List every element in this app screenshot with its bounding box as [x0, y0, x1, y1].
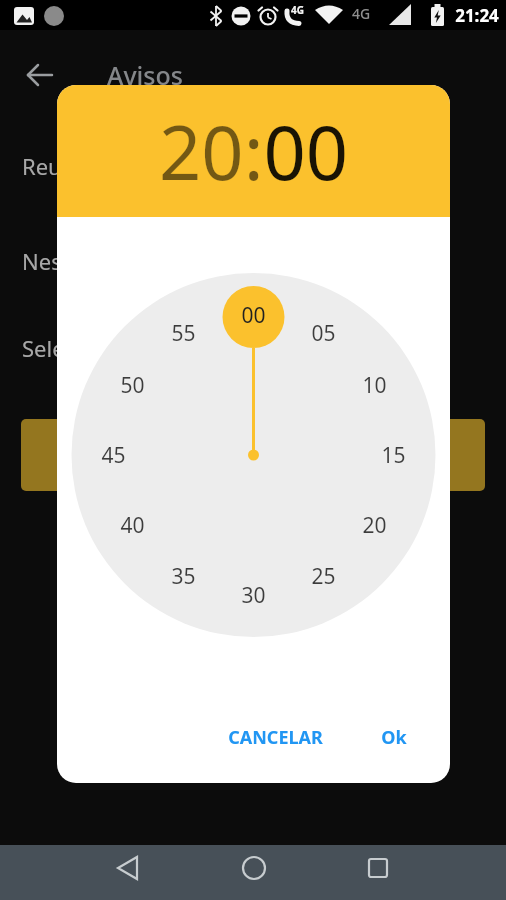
button[interactable]: CANCELAR: [202, 709, 349, 765]
staticText: 4G: [352, 4, 371, 23]
staticText: 55: [171, 319, 196, 347]
staticText: 20:00: [159, 101, 349, 202]
staticText: 45: [101, 441, 126, 469]
button[interactable]: [230, 845, 278, 900]
button[interactable]: Nes: [0, 240, 57, 290]
button[interactable]: [24, 59, 56, 91]
button[interactable]: 50: [110, 371, 154, 399]
staticText: 30: [241, 581, 266, 609]
button[interactable]: 45: [91, 441, 135, 469]
button[interactable]: 55: [161, 319, 205, 347]
button[interactable]: 05: [301, 319, 345, 347]
staticText: 05: [311, 319, 336, 347]
button[interactable]: Sele: [0, 327, 57, 377]
button[interactable]: Reun: [0, 145, 57, 195]
staticText: 40: [120, 511, 145, 539]
staticText: Ok: [381, 725, 407, 750]
staticText: 25: [311, 562, 336, 590]
staticText: 10: [362, 371, 387, 399]
button[interactable]: 20: [352, 511, 396, 539]
staticText: 21:24: [455, 4, 499, 27]
staticText: Nes: [22, 246, 62, 276]
button[interactable]: [354, 845, 402, 900]
staticText: Avisos: [107, 58, 183, 92]
button[interactable]: 35: [161, 562, 205, 590]
staticText: 15: [381, 441, 406, 469]
staticText: 20: [362, 511, 387, 539]
staticText: 4G: [291, 3, 304, 17]
button[interactable]: 25: [301, 562, 345, 590]
staticText: 50: [120, 371, 145, 399]
button[interactable]: Ok: [364, 709, 424, 765]
button[interactable]: [21, 419, 485, 491]
staticText: Sele: [22, 333, 65, 363]
button[interactable]: 30: [231, 581, 275, 609]
staticText: Reun: [22, 151, 76, 181]
button[interactable]: 15: [371, 441, 415, 469]
staticText: CANCELAR: [228, 725, 323, 750]
staticText: 35: [171, 562, 196, 590]
button[interactable]: 10: [352, 371, 396, 399]
button[interactable]: 00: [231, 301, 275, 329]
staticText: 00: [241, 301, 266, 329]
button[interactable]: 40: [110, 511, 154, 539]
button[interactable]: [103, 845, 151, 900]
